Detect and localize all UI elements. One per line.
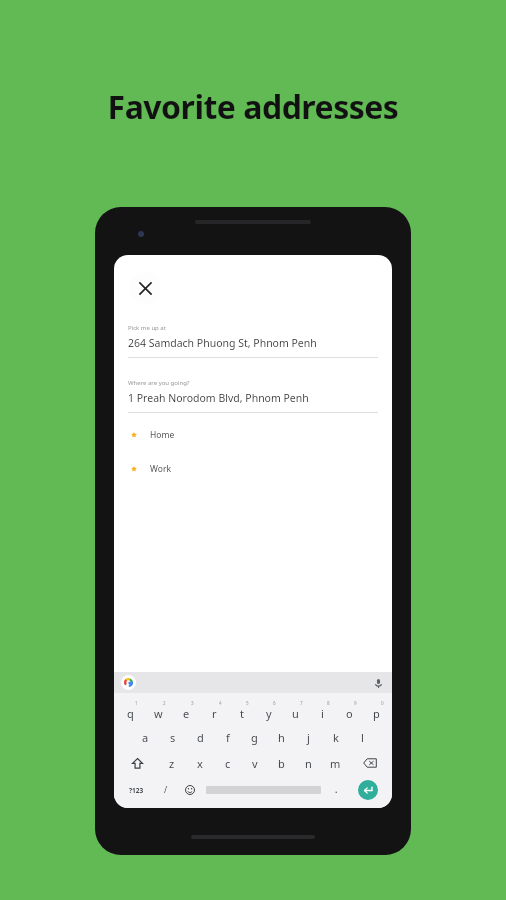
staticText: . bbox=[335, 784, 338, 796]
staticText: n bbox=[305, 756, 312, 771]
staticText: 8 bbox=[327, 700, 330, 706]
staticText: 1 bbox=[135, 700, 138, 706]
staticText: 6 bbox=[273, 700, 276, 706]
staticText: j bbox=[307, 730, 310, 745]
staticText: Favorite addresses bbox=[0, 85, 506, 129]
staticText: 264 Samdach Phuong St, Phnom Penh bbox=[128, 336, 317, 350]
button[interactable]: . bbox=[324, 776, 348, 804]
staticText: i bbox=[321, 706, 324, 721]
button[interactable]: z bbox=[158, 750, 186, 776]
button[interactable]: Enter bbox=[348, 776, 388, 804]
button[interactable]: 5 bbox=[228, 698, 255, 724]
staticText: s bbox=[170, 730, 176, 745]
button[interactable]: k bbox=[322, 724, 349, 750]
staticText: u bbox=[292, 706, 299, 721]
staticText: Work bbox=[150, 463, 171, 475]
staticText: r bbox=[212, 706, 217, 721]
staticText: g bbox=[251, 730, 258, 745]
button[interactable]: v bbox=[241, 750, 268, 776]
button[interactable]: 7 bbox=[282, 698, 309, 724]
button[interactable]: Backspace bbox=[349, 750, 390, 776]
staticText: 5 bbox=[246, 700, 249, 706]
button[interactable]: 6 bbox=[255, 698, 282, 724]
staticText: / bbox=[164, 784, 168, 796]
staticText: 3 bbox=[191, 700, 194, 706]
button[interactable]: Voice input bbox=[371, 676, 385, 690]
button[interactable]: Home bbox=[114, 429, 392, 441]
staticText: Where are you going? bbox=[128, 379, 190, 387]
button[interactable]: Work bbox=[114, 463, 392, 475]
button[interactable]: 9 bbox=[336, 698, 363, 724]
button[interactable]: s bbox=[159, 724, 187, 750]
staticText: a bbox=[142, 730, 149, 745]
button[interactable]: / bbox=[154, 776, 178, 804]
button[interactable]: ?123 bbox=[118, 776, 154, 804]
button[interactable]: 8 bbox=[309, 698, 336, 724]
staticText: t bbox=[240, 706, 244, 721]
button[interactable]: Pick me up at bbox=[114, 324, 392, 358]
button[interactable]: a bbox=[131, 724, 159, 750]
staticText: o bbox=[346, 706, 353, 721]
button[interactable]: Google bbox=[121, 675, 136, 690]
staticText: w bbox=[154, 706, 163, 721]
staticText: 0 bbox=[381, 700, 384, 706]
button[interactable]: Close bbox=[129, 272, 161, 304]
staticText: m bbox=[330, 756, 341, 771]
staticText: c bbox=[225, 756, 231, 771]
button[interactable]: j bbox=[295, 724, 322, 750]
button[interactable]: 0 bbox=[363, 698, 390, 724]
staticText: h bbox=[278, 730, 285, 745]
button[interactable]: h bbox=[268, 724, 295, 750]
button[interactable]: Space bbox=[202, 776, 324, 804]
button[interactable]: 2 bbox=[144, 698, 172, 724]
button[interactable]: n bbox=[295, 750, 322, 776]
button[interactable]: 4 bbox=[200, 698, 228, 724]
staticText: b bbox=[278, 756, 285, 771]
button[interactable]: l bbox=[349, 724, 376, 750]
staticText: q bbox=[127, 706, 134, 721]
button[interactable]: Shift bbox=[116, 750, 158, 776]
staticText: e bbox=[183, 706, 190, 721]
button[interactable]: 1 bbox=[116, 698, 144, 724]
staticText: k bbox=[333, 730, 339, 745]
staticText: f bbox=[226, 730, 230, 745]
staticText: l bbox=[361, 730, 364, 745]
staticText: z bbox=[169, 756, 175, 771]
staticText: 4 bbox=[219, 700, 222, 706]
staticText: ?123 bbox=[129, 786, 144, 795]
staticText: v bbox=[252, 756, 258, 771]
button[interactable]: b bbox=[268, 750, 295, 776]
staticText: d bbox=[197, 730, 204, 745]
staticText: 2 bbox=[163, 700, 166, 706]
staticText: p bbox=[373, 706, 380, 721]
staticText: y bbox=[266, 706, 272, 721]
button[interactable]: d bbox=[187, 724, 214, 750]
button[interactable]: Where are you going? bbox=[114, 379, 392, 413]
button[interactable]: 3 bbox=[172, 698, 200, 724]
staticText: x bbox=[197, 756, 203, 771]
staticText: 7 bbox=[300, 700, 303, 706]
button[interactable]: m bbox=[322, 750, 349, 776]
staticText: 9 bbox=[354, 700, 357, 706]
button[interactable]: c bbox=[214, 750, 241, 776]
staticText: 1 Preah Norodom Blvd, Phnom Penh bbox=[128, 391, 309, 405]
button[interactable]: x bbox=[186, 750, 214, 776]
button[interactable]: Emoji bbox=[178, 776, 202, 804]
button[interactable]: g bbox=[241, 724, 268, 750]
staticText: Home bbox=[150, 429, 175, 441]
button[interactable]: f bbox=[214, 724, 241, 750]
staticText: Pick me up at bbox=[128, 324, 166, 332]
